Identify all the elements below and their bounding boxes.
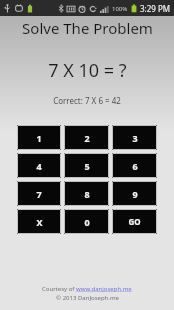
staticText: 3 [132, 132, 138, 144]
staticText: 8 [84, 188, 90, 200]
staticText: www.danjoseph.me [76, 285, 132, 293]
button[interactable]: 5 [64, 153, 109, 178]
staticText: 100% [112, 5, 128, 13]
staticText: Correct: 7 X 6 = 42 [53, 95, 121, 106]
button[interactable]: 3 [112, 125, 157, 150]
staticText: 6 [132, 160, 138, 172]
staticText: Solve The Problem [22, 18, 153, 38]
staticText: 7 [36, 188, 42, 200]
button[interactable]: 1 [17, 125, 61, 150]
button[interactable]: 2 [64, 125, 109, 150]
button[interactable]: X [17, 209, 61, 234]
staticText: 9 [132, 188, 138, 200]
button[interactable]: 7 [17, 181, 61, 206]
button[interactable]: 0 [64, 209, 109, 234]
staticText: 0 [84, 216, 90, 228]
staticText: 4 [36, 160, 42, 172]
staticText: © 2013 DanJoseph.me [56, 294, 119, 302]
staticText: Courtesy of [42, 285, 76, 293]
staticText: GO [128, 216, 141, 227]
staticText: X [36, 216, 43, 228]
staticText: 7 X 10 = ? [48, 58, 127, 83]
button[interactable]: 4 [17, 153, 61, 178]
button[interactable]: 9 [112, 181, 157, 206]
button[interactable]: 8 [64, 181, 109, 206]
staticText: 2 [84, 132, 90, 144]
staticText: 3:29 PM [140, 3, 171, 14]
button[interactable]: GO [112, 209, 157, 234]
staticText: 1 [36, 132, 42, 144]
button[interactable]: www.danjoseph.me [76, 285, 132, 293]
staticText: 5 [84, 160, 90, 172]
button[interactable]: 6 [112, 153, 157, 178]
